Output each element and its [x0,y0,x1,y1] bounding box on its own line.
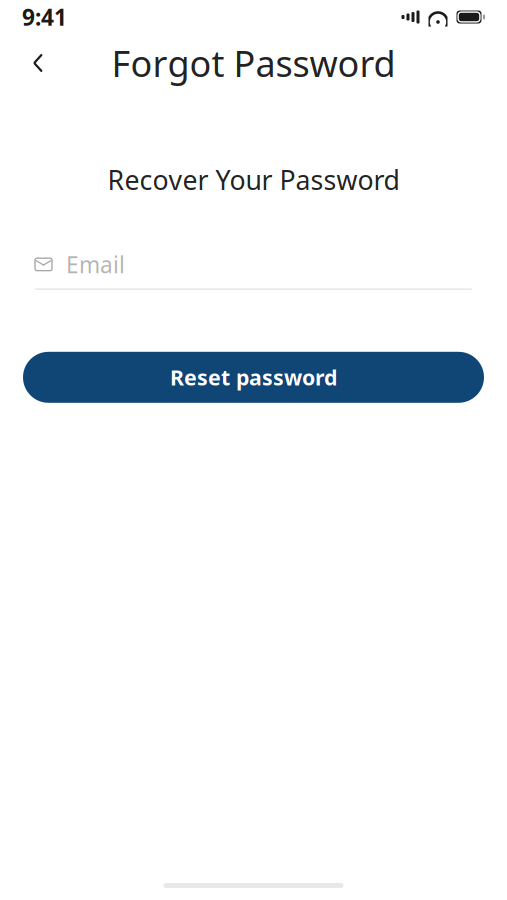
button[interactable]: Reset password [23,352,484,403]
staticText: Reset password [170,363,337,391]
staticText: Email [66,249,125,279]
staticText: 9:41 [22,2,67,32]
button[interactable]: Back [16,41,60,85]
staticText: Recover Your Password [107,162,399,197]
staticText: Forgot Password [111,39,395,87]
